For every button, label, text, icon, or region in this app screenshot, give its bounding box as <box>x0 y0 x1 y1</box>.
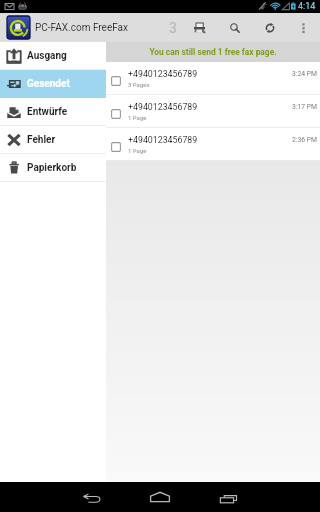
staticText: 4:14 <box>298 1 316 12</box>
staticText: 3:17 PM <box>292 103 318 111</box>
staticText: You can still send 1 free fax page. <box>149 47 277 57</box>
staticText: Papierkorb <box>27 162 77 174</box>
staticText: 2:36 PM <box>292 136 318 144</box>
staticText: 1 Page <box>128 114 147 121</box>
button[interactable]: Select fax <box>111 109 121 119</box>
button[interactable]: You can still send 1 free fax page. <box>106 42 320 62</box>
button[interactable]: Select fax <box>111 76 121 86</box>
staticText: Gesendet <box>27 78 70 90</box>
staticText: Fehler <box>27 134 56 146</box>
button[interactable]: Ausgang <box>0 42 106 69</box>
button[interactable]: Print <box>186 13 213 42</box>
button[interactable]: Select fax <box>111 142 121 152</box>
button[interactable]: Fehler <box>0 126 106 153</box>
staticText: Entwürfe <box>27 106 68 118</box>
button[interactable]: Search <box>221 13 248 42</box>
staticText: PC-FAX.com FreeFax <box>35 22 128 34</box>
staticText: 3:24 PM <box>292 70 318 78</box>
button[interactable]: PC-FAX.com FreeFax <box>7 13 128 42</box>
button[interactable]: Entwürfe <box>0 98 106 125</box>
button[interactable]: Back <box>58 482 126 512</box>
staticText: +4940123456789 <box>128 102 198 112</box>
staticText: +4940123456789 <box>128 135 198 145</box>
button[interactable]: Refresh <box>256 13 283 42</box>
button[interactable]: Select fax <box>106 128 320 160</box>
staticText: 3 <box>169 20 177 36</box>
button[interactable]: Papierkorb <box>0 154 106 181</box>
button[interactable]: Select fax <box>106 95 320 127</box>
staticText: 1 Page <box>128 147 147 154</box>
button[interactable]: More options <box>291 13 315 42</box>
button[interactable]: Home <box>126 482 194 512</box>
staticText: +4940123456789 <box>128 69 198 79</box>
button[interactable]: Recents <box>194 482 262 512</box>
staticText: Ausgang <box>27 50 67 62</box>
staticText: 3 Pages <box>128 81 150 88</box>
button[interactable]: Select fax <box>106 62 320 94</box>
button[interactable]: Gesendet <box>0 70 106 97</box>
